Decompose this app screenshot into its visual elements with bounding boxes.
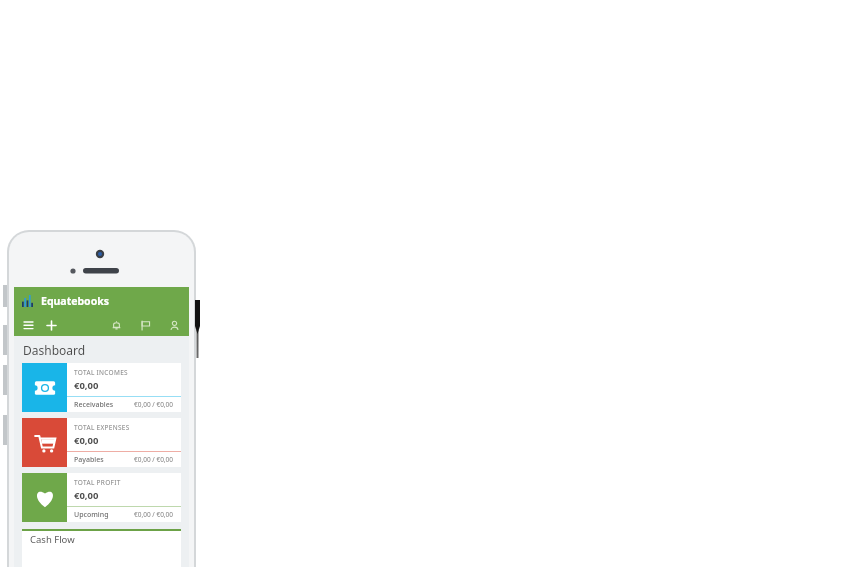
button[interactable]: Account xyxy=(166,317,182,333)
staticText: €0,00 / €0,00 xyxy=(134,510,174,519)
staticText: Equatebooks xyxy=(41,294,109,308)
button[interactable]: Add xyxy=(44,318,58,332)
staticText: Payables xyxy=(74,455,104,465)
staticText: TOTAL INCOMES xyxy=(74,368,128,377)
staticText: Receivables xyxy=(74,400,114,410)
staticText: €0,00 xyxy=(74,434,99,447)
staticText: €0,00 / €0,00 xyxy=(134,455,174,464)
button[interactable]: Menu xyxy=(21,318,35,332)
staticText: €0,00 / €0,00 xyxy=(134,400,174,409)
button[interactable]: Cash Flow xyxy=(22,529,181,567)
staticText: Upcoming xyxy=(74,510,109,520)
button[interactable]: TOTAL INCOMES xyxy=(22,363,181,412)
staticText: €0,00 xyxy=(74,379,99,392)
staticText: €0,00 xyxy=(74,489,99,502)
staticText: Cash Flow xyxy=(30,533,75,546)
button[interactable]: Flags xyxy=(137,317,153,333)
button[interactable]: TOTAL EXPENSES xyxy=(22,418,181,467)
staticText: Dashboard xyxy=(23,342,86,358)
staticText: TOTAL PROFIT xyxy=(74,478,121,487)
staticText: TOTAL EXPENSES xyxy=(74,423,130,432)
button[interactable]: Notifications xyxy=(108,317,124,333)
button[interactable]: TOTAL PROFIT xyxy=(22,473,181,522)
